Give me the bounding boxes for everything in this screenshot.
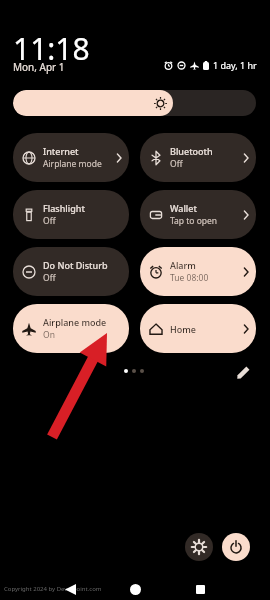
- button[interactable]: Do Not Disturb: [13, 247, 129, 296]
- staticText: Mon, Apr 1: [13, 60, 65, 74]
- button[interactable]: Back: [55, 574, 85, 600]
- staticText: Wallet: [170, 202, 197, 214]
- staticText: Home: [170, 323, 196, 335]
- button[interactable]: Home: [120, 574, 150, 600]
- staticText: Off: [43, 215, 56, 227]
- staticText: Tap to open: [170, 215, 218, 227]
- button[interactable]: Internet: [13, 133, 129, 182]
- staticText: Do Not Disturb: [43, 259, 108, 271]
- button[interactable]: [13, 90, 256, 116]
- staticText: 1 day, 1 hr: [213, 59, 257, 71]
- staticText: Airplane mode: [43, 316, 107, 328]
- button[interactable]: Alarm: [140, 247, 256, 296]
- staticText: Off: [43, 272, 56, 284]
- button[interactable]: Flashlight: [13, 190, 129, 239]
- staticText: Alarm: [170, 259, 196, 271]
- staticText: Off: [170, 158, 183, 170]
- staticText: Bluetooth: [170, 145, 213, 157]
- button[interactable]: Edit tiles: [232, 361, 254, 383]
- staticText: Internet: [43, 145, 79, 157]
- button[interactable]: Bluetooth: [140, 133, 256, 182]
- button[interactable]: Wallet: [140, 190, 256, 239]
- button[interactable]: Home: [140, 304, 256, 353]
- button[interactable]: Recents: [185, 574, 215, 600]
- button[interactable]: Power: [222, 533, 250, 561]
- staticText: Tue 08:00: [170, 272, 209, 284]
- staticText: Copyright 2024 by Devo-point.com: [4, 585, 102, 593]
- staticText: Airplane mode: [43, 158, 102, 170]
- button[interactable]: Settings: [185, 533, 213, 561]
- button[interactable]: Airplane mode: [13, 304, 129, 353]
- staticText: Flashlight: [43, 202, 85, 214]
- staticText: 11:18: [13, 28, 90, 69]
- staticText: On: [43, 329, 55, 341]
